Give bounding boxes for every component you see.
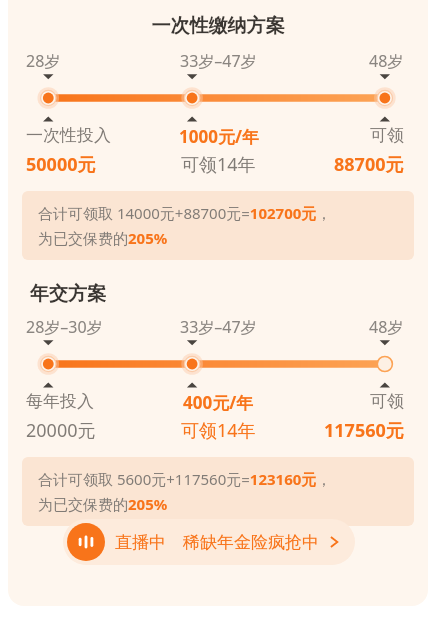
staticText: 一次性投入 [26,125,111,146]
staticText: 每年投入 [26,391,94,412]
staticText: 稀缺年金险疯抢中 [183,532,319,553]
staticText: 48岁 [369,50,404,72]
staticText: 28岁 [26,50,61,72]
staticText: 直播中 [115,532,166,553]
staticText: 可领 [370,125,404,146]
staticText: 可领14年 [181,152,256,177]
staticText: 年交方案 [30,282,106,306]
staticText: 合计可领取 5600元+117560元=123160元， 为已交保费的205% [38,469,332,514]
staticText: 可领14年 [181,418,256,443]
staticText: 可领 [370,391,404,412]
staticText: 一次性缴纳方案 [8,14,428,38]
staticText: 50000元 [26,152,96,177]
staticText: 33岁–47岁 [180,50,257,72]
button[interactable]: 直播中 [63,519,355,565]
other: 直播中 [67,523,105,561]
staticText: 28岁–30岁 [26,316,103,338]
staticText: 20000元 [26,418,96,443]
staticText: 117560元 [324,418,404,443]
staticText: 33岁–47岁 [180,316,257,338]
staticText: 1000元/年 [179,125,259,148]
staticText: 合计可领取 14000元+88700元=102700元， 为已交保费的205% [38,203,332,248]
staticText: 48岁 [369,316,404,338]
staticText: 88700元 [334,152,404,177]
staticText: 400元/年 [183,391,254,414]
